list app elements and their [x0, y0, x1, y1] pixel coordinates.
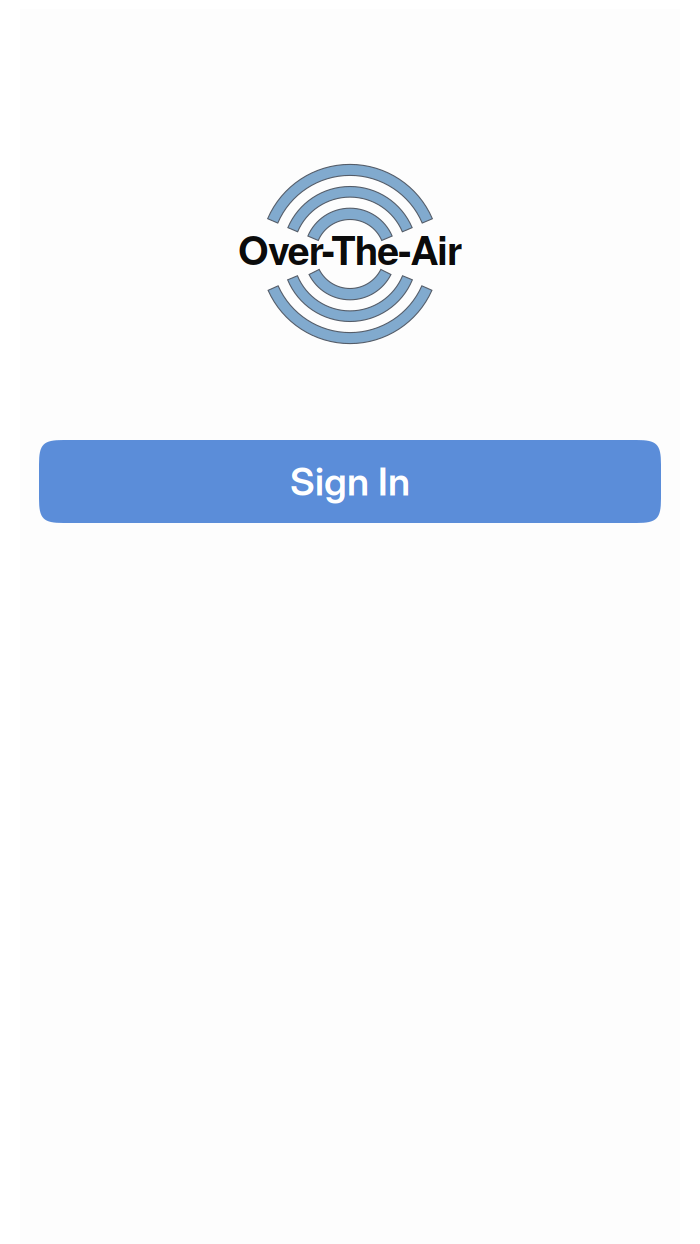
- staticText: Over-The-Air: [238, 221, 462, 277]
- staticText: Sign In: [290, 458, 410, 505]
- button[interactable]: Sign In: [39, 440, 661, 523]
